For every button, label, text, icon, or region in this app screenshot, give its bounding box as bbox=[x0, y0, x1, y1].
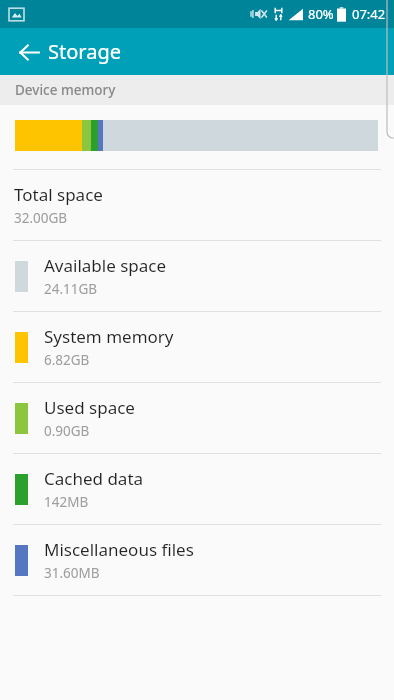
staticText: Total space bbox=[14, 183, 103, 206]
button[interactable]: Back bbox=[10, 33, 48, 71]
staticText: Miscellaneous files bbox=[44, 538, 194, 561]
staticText: 07:42 bbox=[352, 5, 386, 23]
staticText: 6.82GB bbox=[44, 351, 90, 369]
staticText: Storage bbox=[48, 38, 121, 65]
button[interactable]: System memory bbox=[0, 312, 394, 382]
staticText: 0.90GB bbox=[44, 422, 90, 440]
staticText: 80% bbox=[308, 5, 334, 23]
button[interactable]: Cached data bbox=[0, 454, 394, 524]
button[interactable]: Used space bbox=[0, 383, 394, 453]
button[interactable]: Miscellaneous files bbox=[0, 525, 394, 595]
staticText: Available space bbox=[44, 254, 167, 277]
staticText: 24.11GB bbox=[44, 280, 98, 298]
staticText: 31.60MB bbox=[44, 564, 100, 582]
staticText: 32.00GB bbox=[14, 209, 68, 227]
staticText: Device memory bbox=[15, 81, 116, 99]
button[interactable]: Available space bbox=[0, 241, 394, 311]
staticText: Used space bbox=[44, 396, 135, 419]
button[interactable]: Total space bbox=[0, 170, 394, 240]
staticText: 142MB bbox=[44, 493, 89, 511]
staticText: Cached data bbox=[44, 467, 144, 490]
staticText: System memory bbox=[44, 325, 174, 348]
